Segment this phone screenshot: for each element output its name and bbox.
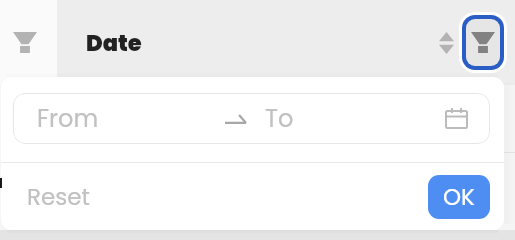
staticText: Date [86, 27, 142, 58]
button[interactable]: Sort [435, 27, 457, 59]
staticText: From [37, 102, 99, 136]
button[interactable]: Reset [15, 175, 102, 219]
staticText: Reset [27, 181, 90, 213]
button[interactable]: Filter rows [0, 0, 57, 85]
button[interactable]: Filter column [466, 19, 500, 66]
button[interactable]: OK [428, 175, 490, 219]
staticText: OK [443, 181, 475, 213]
staticText: To [265, 102, 294, 136]
button[interactable]: From [13, 93, 490, 144]
